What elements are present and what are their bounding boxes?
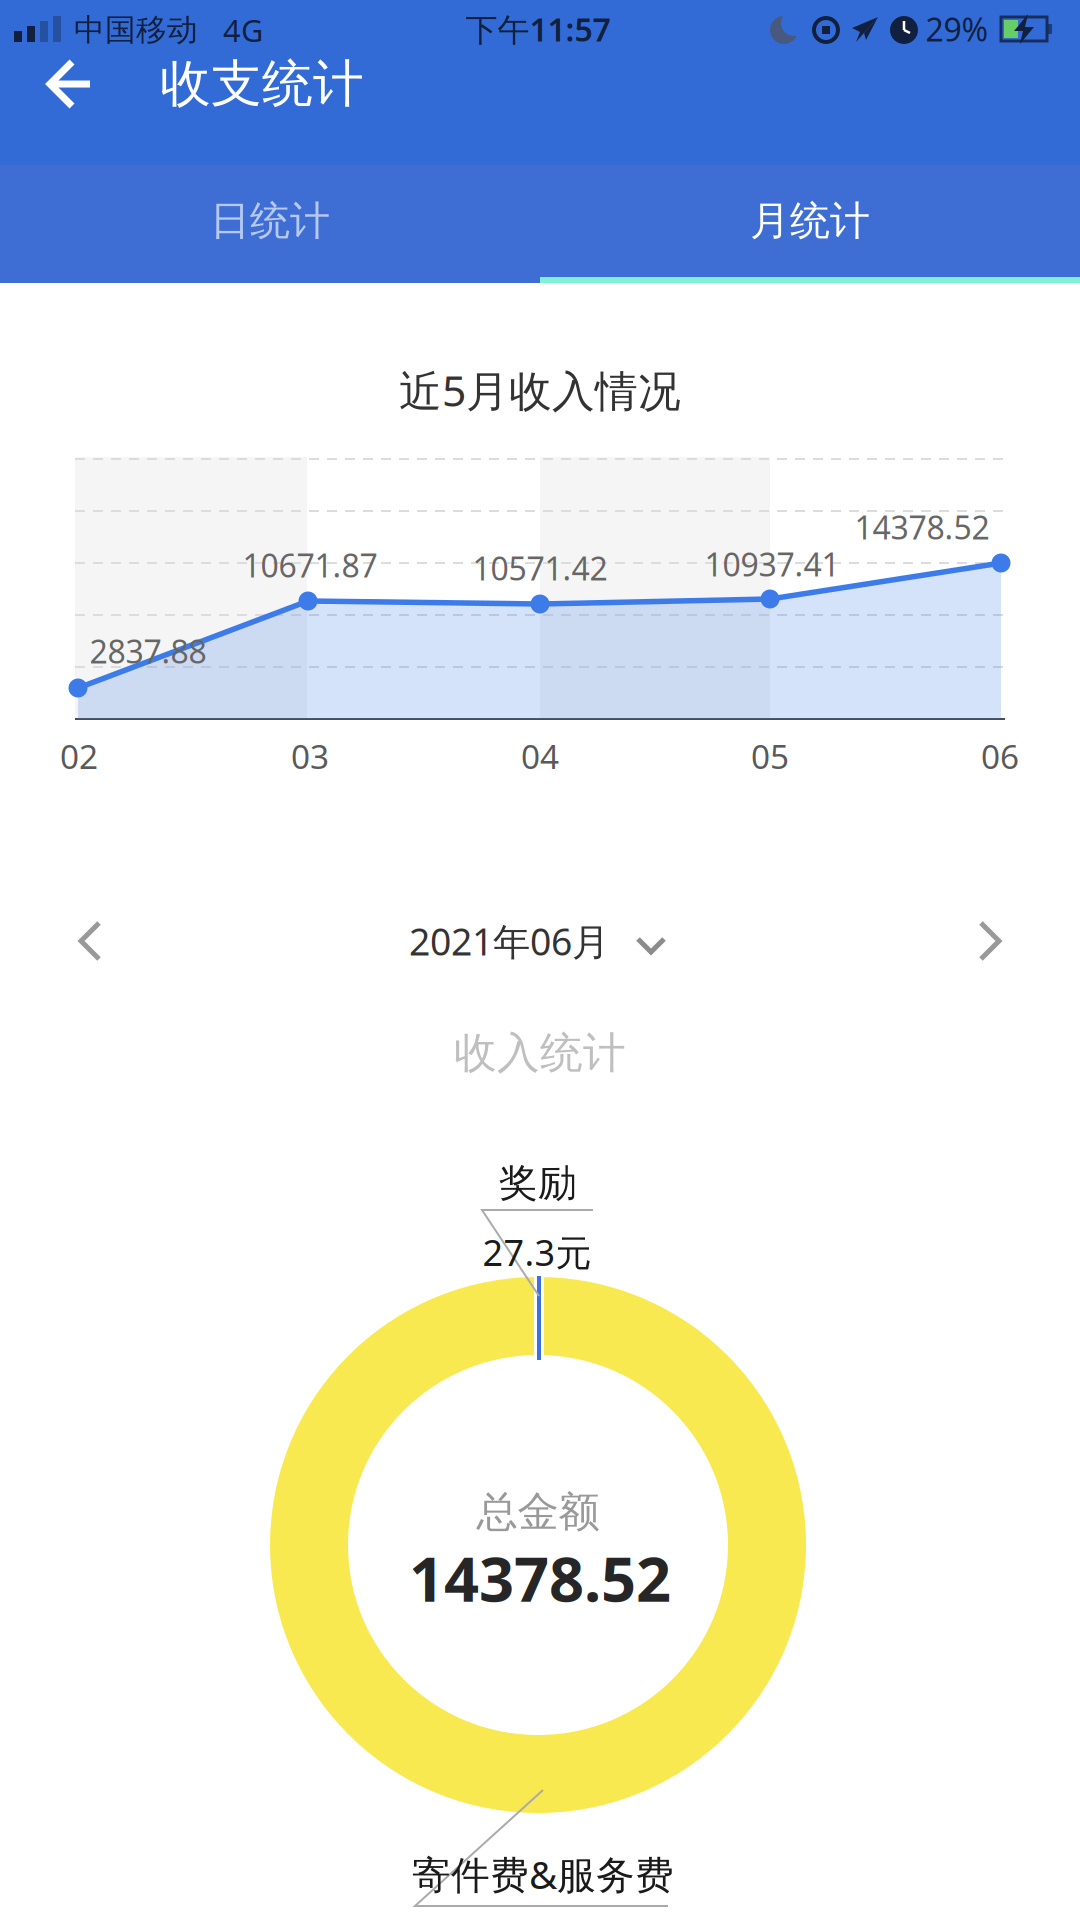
staticText: 27.3元 [482, 1228, 591, 1276]
button[interactable]: 日统计 [0, 165, 540, 277]
staticText: 日统计 [210, 196, 330, 245]
staticText: 4G [223, 10, 263, 50]
staticText: 中国移动 [74, 11, 198, 49]
staticText: 05 [751, 734, 789, 778]
staticText: 2021年06月 [409, 916, 609, 966]
staticText: 04 [521, 734, 559, 778]
staticText: 奖励 [499, 1159, 577, 1207]
staticText: 收入统计 [454, 1027, 626, 1079]
staticText: 近5月收入情况 [399, 362, 681, 418]
staticText: 月统计 [750, 196, 870, 245]
staticText: 14378.52 [854, 506, 989, 548]
staticText: 03 [291, 734, 329, 778]
button[interactable] [950, 901, 1030, 981]
staticText: 总金额 [476, 1487, 599, 1537]
staticText: 收支统计 [160, 53, 364, 115]
staticText: 10671.87 [242, 544, 377, 586]
staticText: 02 [60, 734, 98, 778]
button[interactable]: 2021年06月 [409, 916, 667, 966]
button[interactable]: 月统计 [540, 165, 1080, 277]
staticText: 2837.88 [89, 630, 206, 672]
button[interactable] [20, 34, 120, 134]
button[interactable] [50, 901, 130, 981]
staticText: 10571.42 [472, 547, 607, 589]
staticText: 29% [925, 8, 988, 50]
staticText: 14378.52 [409, 1537, 671, 1619]
staticText: 10937.41 [704, 543, 839, 585]
staticText: 下午11:57 [465, 8, 610, 50]
staticText: 寄件费&服务费 [412, 1848, 674, 1900]
staticText: 06 [981, 734, 1019, 778]
